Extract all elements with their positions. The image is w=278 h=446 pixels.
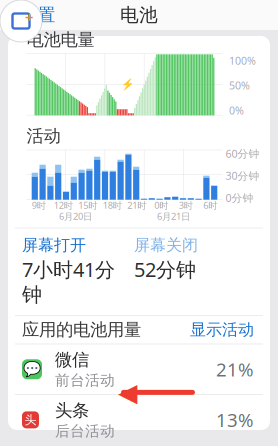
- staticText: 60分钟: [225, 146, 259, 161]
- button[interactable]: 显示活动: [190, 320, 254, 340]
- staticText: 屏幕打开: [22, 235, 86, 255]
- staticText: +: [25, 7, 33, 27]
- staticText: 💬: [23, 361, 41, 378]
- staticText: 微信: [55, 349, 89, 370]
- staticText: 9时: [32, 199, 46, 211]
- staticText: 30分钟: [225, 169, 259, 183]
- staticText: 100%: [229, 53, 256, 68]
- staticText: 0%: [229, 103, 244, 117]
- staticText: 应用的电池用量: [22, 319, 141, 340]
- staticText: 15时: [78, 199, 97, 211]
- staticText: 头: [24, 412, 36, 427]
- staticText: 0时: [154, 199, 168, 211]
- staticText: 设置: [21, 4, 55, 26]
- staticText: 6月20日: [59, 210, 92, 222]
- staticText: 屏幕关闭: [134, 235, 198, 255]
- button[interactable]: 💬: [8, 344, 270, 394]
- staticText: 0分钟: [225, 191, 253, 205]
- staticText: ⚡: [120, 78, 133, 90]
- staticText: 7小时41分钟: [22, 256, 115, 307]
- staticText: 电池电量: [26, 29, 94, 50]
- staticText: 前台活动: [55, 371, 115, 389]
- staticText: 后台活动: [55, 422, 115, 440]
- button[interactable]: 头: [8, 395, 270, 445]
- staticText: 6月21日: [157, 210, 190, 222]
- staticText: 18时: [103, 199, 122, 211]
- staticText: 12时: [54, 199, 73, 211]
- staticText: 21%: [216, 357, 254, 382]
- staticText: 6时: [203, 199, 217, 211]
- staticText: 50%: [229, 78, 250, 92]
- staticText: 头条: [55, 400, 89, 421]
- staticText: ‹: [12, 0, 20, 32]
- staticText: 13%: [216, 407, 254, 432]
- staticText: 活动: [26, 125, 60, 147]
- staticText: 52分钟: [134, 256, 196, 283]
- staticText: 电池: [120, 3, 158, 26]
- staticText: 3时: [179, 199, 193, 211]
- staticText: ◀: [118, 378, 137, 407]
- staticText: 21时: [127, 199, 146, 211]
- staticText: 显示活动: [190, 320, 254, 340]
- button[interactable]: ‹: [0, 0, 55, 38]
